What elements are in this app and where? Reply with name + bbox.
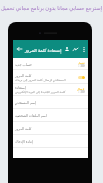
staticText: إستعادة كلمة المرور [25, 47, 62, 53]
staticText: إستعادة [15, 86, 26, 90]
button[interactable]: حساب جديد [13, 58, 88, 70]
staticText: اسم الملفات الشخصية [15, 113, 47, 118]
button[interactable]: More options [80, 40, 87, 58]
button[interactable]: إعادة الإدخال [13, 135, 88, 148]
staticText: المستخدم لإرسال كلمة المرور إلى بريدك [15, 78, 66, 82]
button[interactable]: Trending [71, 40, 80, 58]
button[interactable]: إستعادة [13, 84, 88, 96]
button[interactable]: إسم المستخدم [13, 96, 88, 109]
button[interactable]: Back [14, 40, 25, 58]
staticText: تفعيل [78, 61, 85, 64]
staticText: حساب جديد [15, 62, 32, 67]
staticText: إرسال [77, 87, 85, 90]
button[interactable]: اسم الملفات الشخصية [13, 109, 88, 122]
button[interactable]: كلمة المرور [13, 122, 88, 135]
staticText: إسم المستخدم [15, 100, 36, 105]
staticText: كلمة المرور الجديدة إلى البريد الإلكترون… [15, 90, 66, 94]
staticText: إعادة الإدخال [15, 139, 34, 144]
button[interactable]: Account [62, 40, 71, 58]
staticText: إسترجع حسابي مجانا بدون برنامج مجاني تحم… [0, 4, 103, 11]
staticText: كلمة المرور [15, 73, 32, 78]
staticText: كلمة المرور [15, 126, 32, 131]
button[interactable]: كلمة المرور [13, 70, 88, 84]
